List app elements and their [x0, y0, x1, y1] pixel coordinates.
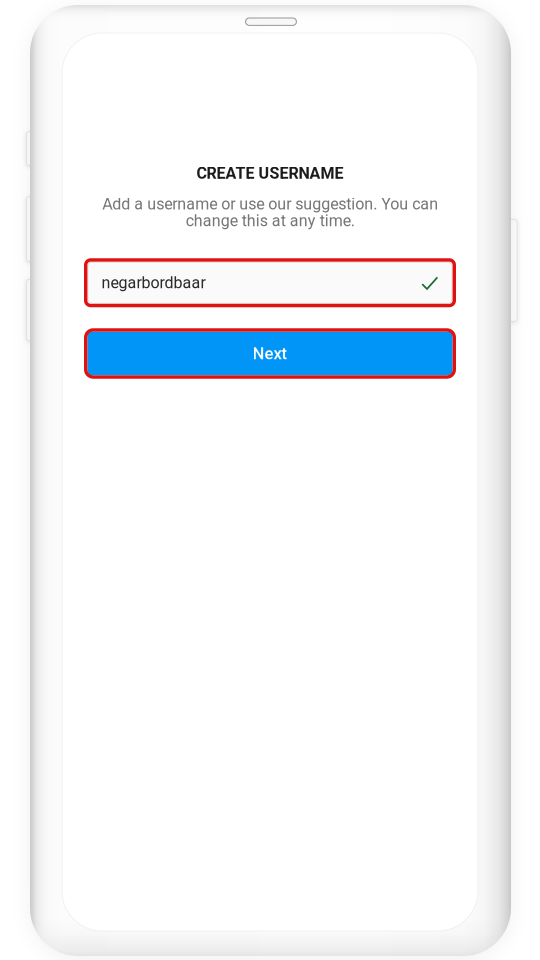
staticText: Add a username or use our suggestion. Yo… [102, 195, 438, 230]
button[interactable]: negarbordbaar [84, 258, 456, 307]
staticText: Next [252, 344, 287, 363]
staticText: CREATE USERNAME [196, 164, 343, 183]
button[interactable]: Next [84, 328, 456, 379]
staticText: negarbordbaar [101, 273, 205, 292]
